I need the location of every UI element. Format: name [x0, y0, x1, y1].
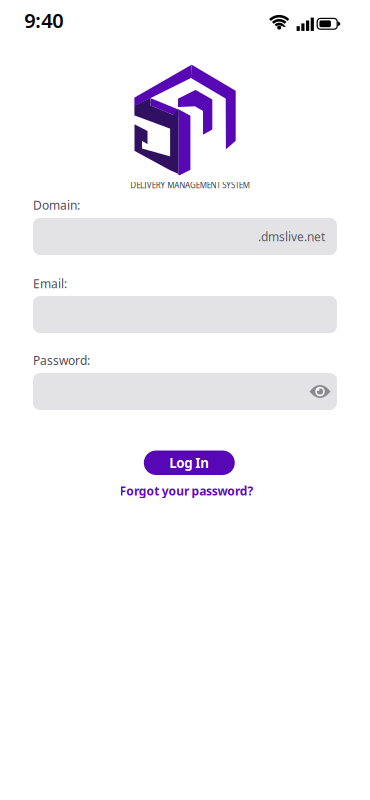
button[interactable]: .dmslive.net — [33, 218, 337, 255]
button[interactable]: Forgot your password? — [119, 483, 253, 499]
staticText: Forgot your password? — [119, 483, 253, 499]
staticText: Password: — [33, 352, 90, 368]
staticText: Log In — [169, 454, 209, 472]
staticText: DELIVERY MANAGEMENT SYSTEM — [130, 180, 250, 190]
button[interactable]: Log In — [144, 450, 235, 475]
staticText: Email: — [33, 276, 67, 292]
staticText: 9:40 — [24, 7, 63, 33]
staticText: .dmslive.net — [258, 228, 325, 244]
button[interactable] — [33, 373, 337, 410]
button[interactable] — [305, 373, 335, 410]
staticText: Domain: — [33, 197, 80, 213]
